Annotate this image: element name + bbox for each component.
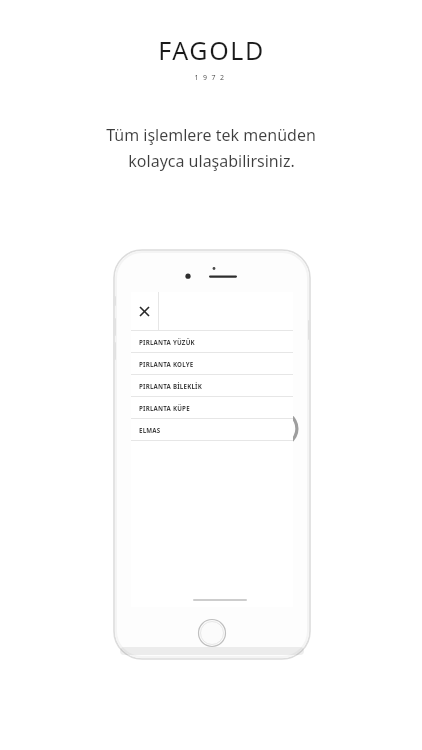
staticText: FAGOLD <box>158 33 265 67</box>
staticText: PIRLANTA BİLEKLİK <box>139 382 203 390</box>
button[interactable]: PIRLANTA KÜPE <box>131 397 293 418</box>
staticText: ELMAS <box>139 426 161 434</box>
staticText: kolayca ulaşabilirsiniz. <box>128 150 295 172</box>
button[interactable]: PIRLANTA KOLYE <box>131 353 293 374</box>
staticText: PIRLANTA YÜZÜK <box>139 338 195 346</box>
button[interactable]: PIRLANTA BİLEKLİK <box>131 375 293 396</box>
staticText: Tüm işlemlere tek menüden <box>106 124 316 146</box>
button[interactable]: PIRLANTA YÜZÜK <box>131 331 293 352</box>
button[interactable]: Close menu <box>131 292 158 330</box>
button[interactable]: ELMAS <box>131 419 293 440</box>
staticText: 1972 <box>194 73 229 83</box>
staticText: PIRLANTA KÜPE <box>139 404 190 412</box>
staticText: PIRLANTA KOLYE <box>139 360 194 368</box>
